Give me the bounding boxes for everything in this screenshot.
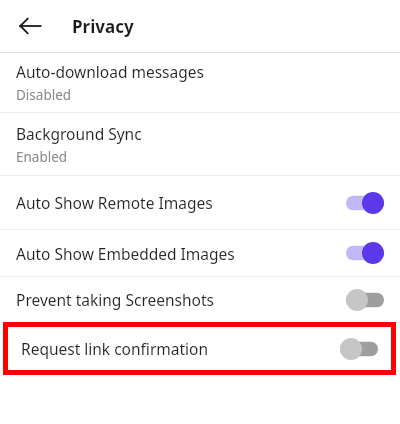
button[interactable]: Prevent taking Screenshots — [0, 277, 400, 322]
button[interactable]: Back — [14, 10, 46, 42]
button[interactable]: Background Sync — [0, 113, 400, 175]
button[interactable]: Request link confirmation — [8, 327, 391, 370]
staticText: Privacy — [72, 15, 134, 38]
staticText: Auto-download messages — [16, 61, 204, 82]
button[interactable]: Auto-download messages — [0, 53, 400, 112]
staticText: Background Sync — [16, 123, 142, 144]
button[interactable]: Auto Show Remote Images — [0, 176, 400, 229]
staticText: Enabled — [16, 148, 68, 166]
staticText: Prevent taking Screenshots — [16, 289, 214, 310]
staticText: Request link confirmation — [21, 338, 340, 359]
staticText: Auto Show Embedded Images — [16, 243, 235, 264]
staticText: Disabled — [16, 86, 72, 104]
button[interactable]: Auto Show Embedded Images — [0, 230, 400, 276]
staticText: Auto Show Remote Images — [16, 192, 213, 213]
